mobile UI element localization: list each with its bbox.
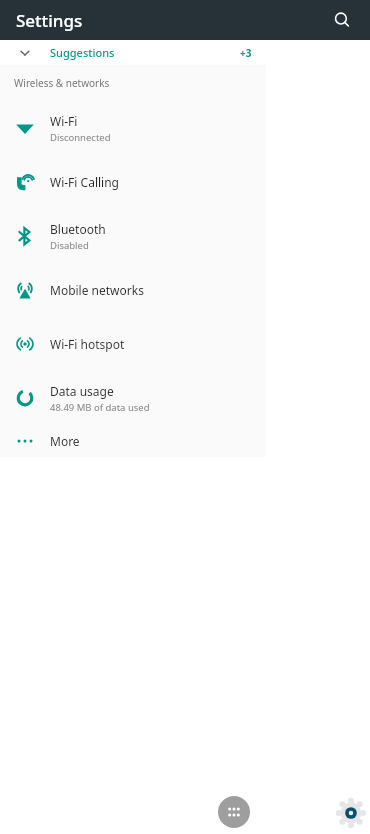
staticText: Mobile networks: [50, 282, 144, 298]
button[interactable]: Wi-Fi Calling: [0, 155, 266, 209]
staticText: Wi-Fi Calling: [50, 174, 119, 190]
button[interactable]: Bluetooth: [0, 209, 266, 263]
staticText: 48.49 MB of data used: [50, 401, 150, 414]
button[interactable]: Data usage: [0, 371, 266, 425]
button[interactable]: Wi-Fi: [0, 101, 266, 155]
staticText: +3: [240, 46, 252, 60]
staticText: Bluetooth: [50, 221, 106, 237]
button[interactable]: Mobile networks: [0, 263, 266, 317]
button[interactable]: Search: [324, 2, 360, 38]
staticText: Data usage: [50, 383, 114, 399]
staticText: Settings: [16, 9, 83, 32]
staticText: Wireless & networks: [14, 76, 110, 90]
staticText: Suggestions: [50, 45, 115, 60]
staticText: Disabled: [50, 239, 89, 252]
button[interactable]: Settings: [336, 798, 366, 828]
staticText: More: [50, 433, 80, 449]
button[interactable]: Suggestions: [0, 40, 266, 65]
button[interactable]: All apps: [218, 796, 250, 828]
button[interactable]: More: [0, 425, 266, 457]
staticText: Disconnected: [50, 131, 111, 144]
staticText: Wi-Fi: [50, 113, 78, 129]
button[interactable]: Wi-Fi hotspot: [0, 317, 266, 371]
staticText: Wi-Fi hotspot: [50, 336, 125, 352]
